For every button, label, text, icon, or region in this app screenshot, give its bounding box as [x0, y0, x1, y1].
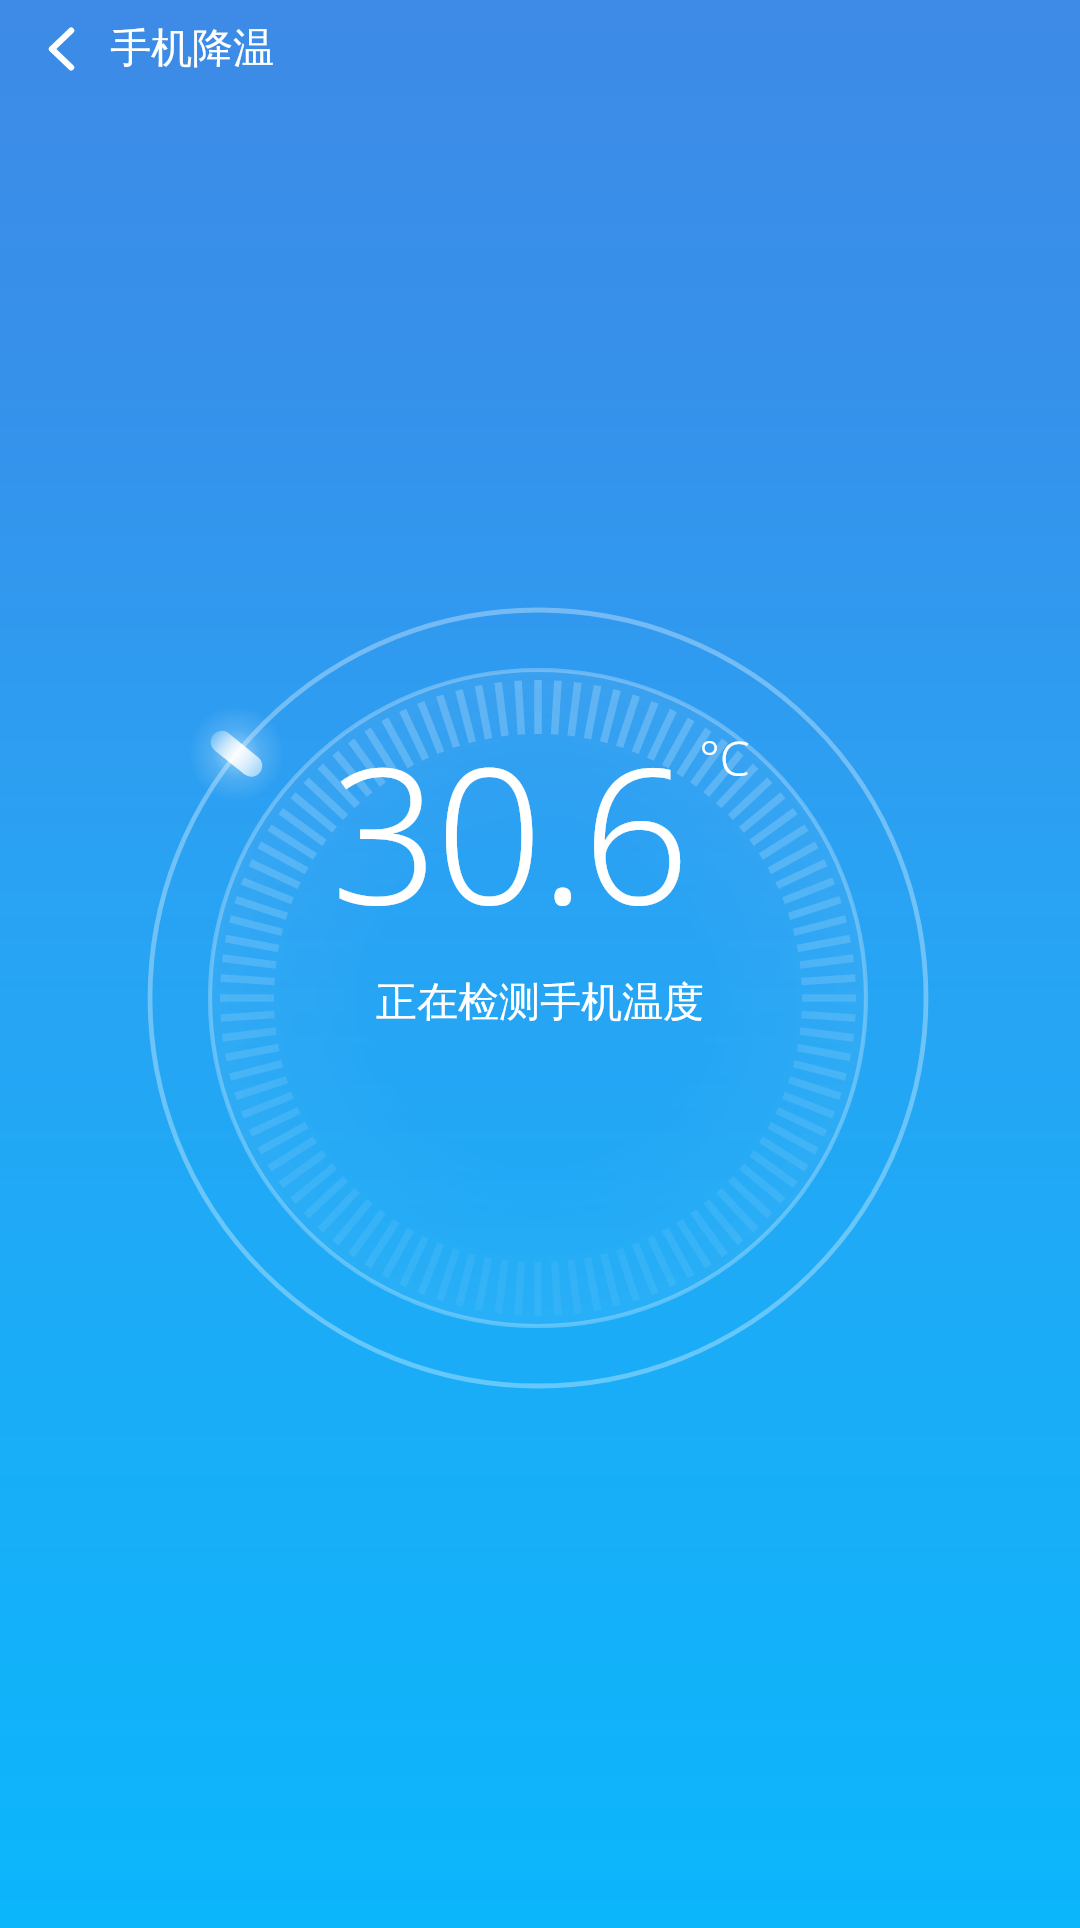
button[interactable]: Back [22, 9, 102, 89]
staticText: °C [699, 725, 750, 790]
staticText: 手机降温 [110, 23, 274, 75]
staticText: 30.6 [331, 703, 687, 959]
staticText: 正在检测手机温度 [376, 977, 704, 1029]
